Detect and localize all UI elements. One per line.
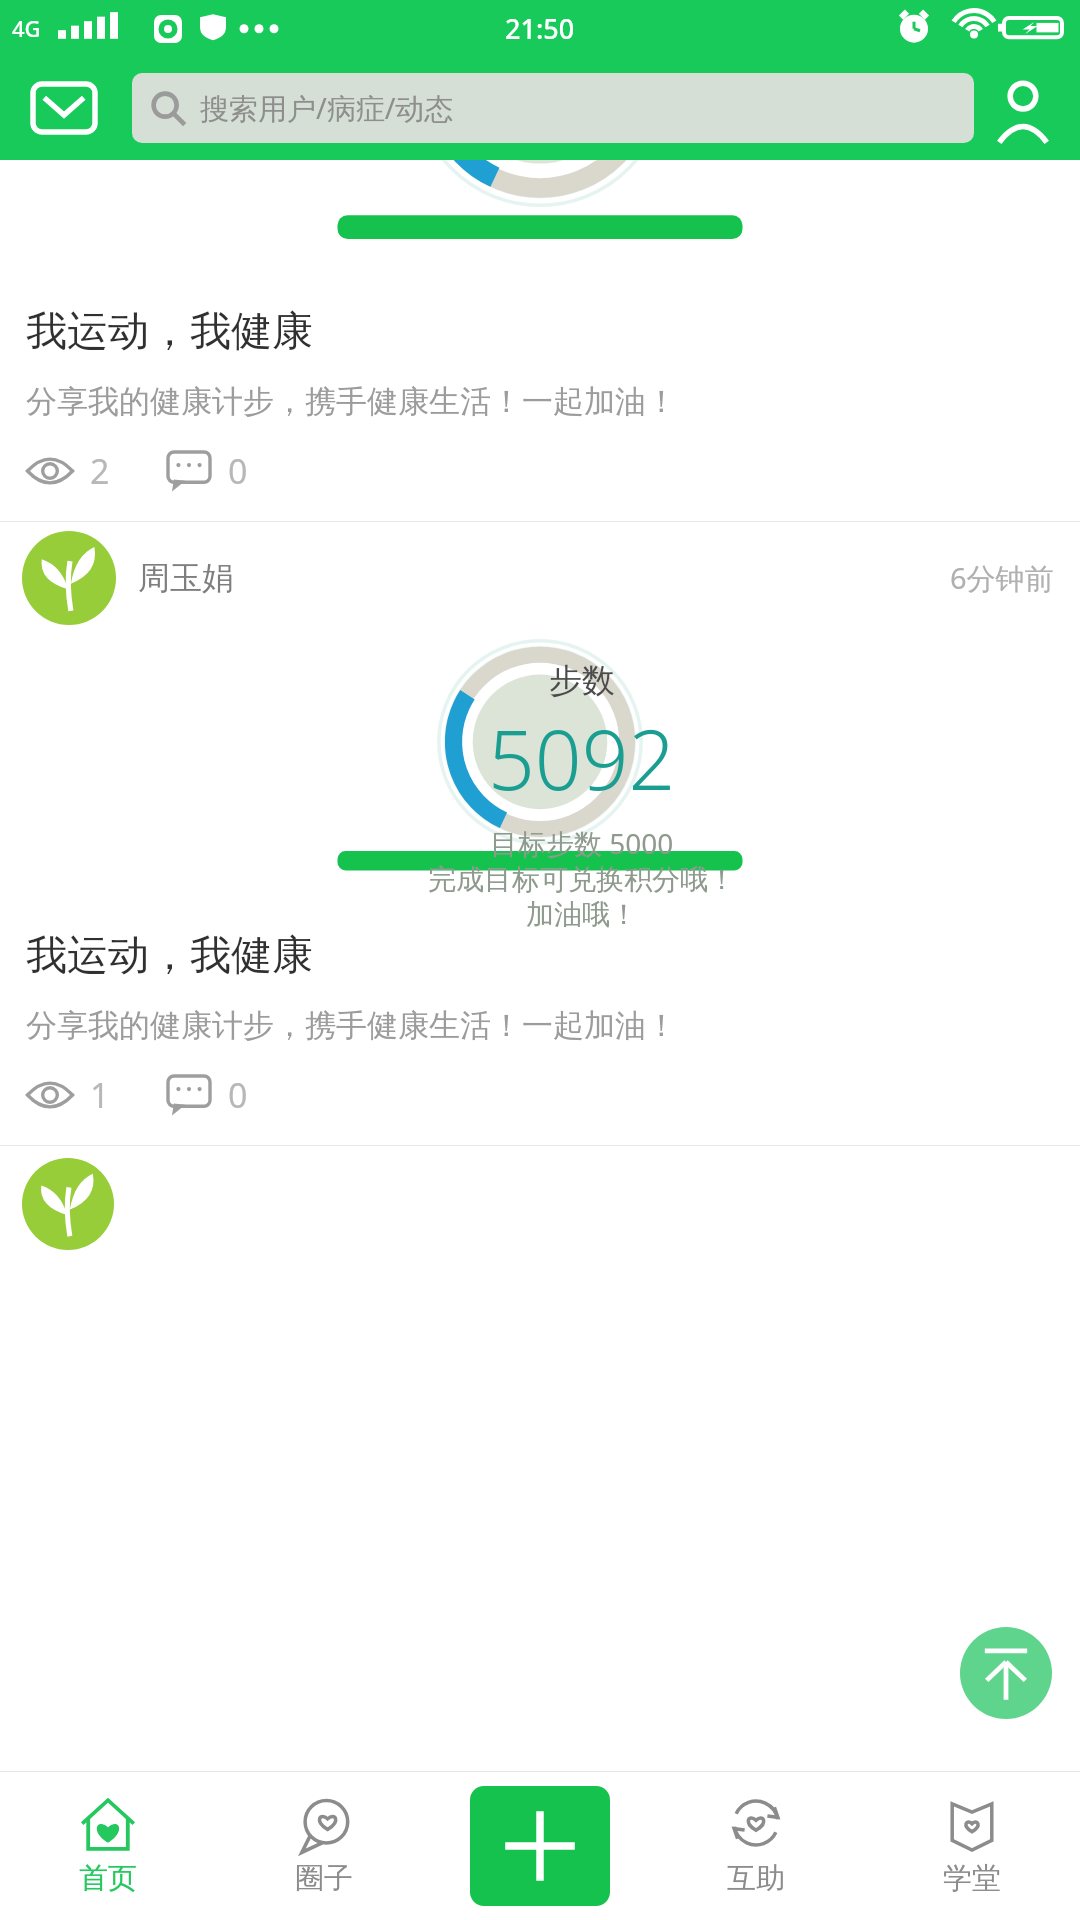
staticText: 5092 (488, 702, 676, 814)
button[interactable]: 2 (26, 448, 110, 494)
staticText: 0 (228, 1072, 248, 1118)
button[interactable]: 学堂 (864, 1796, 1080, 1897)
button[interactable]: 互助 (648, 1796, 864, 1897)
staticText: 圈子 (295, 1860, 353, 1897)
staticText: 首页 (79, 1860, 137, 1897)
staticText: 2 (90, 448, 110, 494)
button[interactable]: 周玉娟 (0, 522, 1080, 634)
button[interactable]: 我运动，我健康 (0, 902, 1080, 1045)
button[interactable]: Messages (30, 81, 98, 135)
button[interactable]: Profile (990, 75, 1056, 141)
staticText: 我运动，我健康 (26, 930, 313, 982)
button[interactable] (0, 1146, 1080, 1771)
button[interactable]: 我运动，我健康 (0, 278, 1080, 421)
button[interactable]: 0 (166, 448, 248, 494)
button[interactable]: 0 (166, 1072, 248, 1118)
staticText: 加油哦！ (526, 897, 638, 928)
staticText: 搜索用户/病症/动态 (200, 88, 454, 128)
staticText: 分享我的健康计步，携手健康生活！一起加油！ (26, 1006, 677, 1045)
staticText: 目标步数 5000 (490, 824, 674, 862)
staticText: 步数 (549, 660, 615, 702)
staticText: 完成目标可兑换积分哦！ (428, 862, 736, 897)
staticText: 分享我的健康计步，携手健康生活！一起加油！ (26, 382, 677, 421)
button[interactable]: 首页 (0, 1796, 216, 1897)
staticText: 21:50 (505, 10, 575, 47)
button[interactable]: Add post (470, 1786, 610, 1906)
staticText: 我运动，我健康 (26, 306, 313, 358)
button[interactable]: 1 (26, 1072, 110, 1118)
button[interactable]: 搜索用户/病症/动态 (132, 73, 974, 143)
button[interactable]: Scroll to top (960, 1627, 1052, 1719)
staticText: 1 (90, 1072, 110, 1118)
button[interactable] (0, 160, 1080, 278)
button[interactable]: 步数 (0, 634, 1080, 902)
staticText: 学堂 (943, 1860, 1001, 1897)
staticText: 互助 (727, 1860, 785, 1897)
staticText: 4G (12, 13, 41, 43)
staticText: 周玉娟 (138, 558, 234, 598)
button[interactable]: 圈子 (216, 1796, 432, 1897)
staticText: 0 (228, 448, 248, 494)
staticText: 6分钟前 (950, 558, 1054, 598)
